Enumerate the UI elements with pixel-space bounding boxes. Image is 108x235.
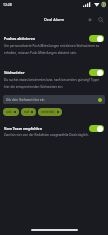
button[interactable]: Toggle: [89, 69, 104, 76]
staticText: Pushes aktivieren: [4, 36, 36, 41]
staticText: Du suchst etwas bestimmtes bzw. nach bes…: [4, 78, 101, 89]
staticText: Deal Alarm: [44, 17, 65, 22]
button[interactable]: Notifications: [84, 14, 95, 25]
staticText: usb: [6, 110, 12, 114]
staticText: Um personalisierte Push-Mitteilungen mit…: [4, 44, 101, 55]
staticText: Stichwörter: [4, 70, 25, 75]
button[interactable]: nintendo: [38, 108, 62, 116]
button[interactable]: Vom Team empfohlen: [0, 124, 108, 132]
button[interactable]: Toggle: [89, 35, 104, 42]
button[interactable]: Toggle: [89, 125, 104, 132]
button[interactable]: ssd: [21, 108, 36, 116]
staticText: 12:28: [3, 2, 12, 7]
button[interactable]: Add keyword: [98, 98, 102, 102]
staticText: nintendo: [41, 110, 55, 114]
staticText: Gib dein Stichwort hier ein: [6, 98, 45, 102]
staticText: Zwei bis vier von der Redaktion ausgewäh…: [4, 133, 89, 137]
button[interactable]: Gib dein Stichwort hier ein: [3, 95, 105, 104]
staticText: Vom Team empfohlen: [4, 126, 42, 131]
button[interactable]: Pushes aktivieren: [0, 34, 108, 42]
button[interactable]: Stichwörter: [0, 68, 108, 76]
button[interactable]: usb: [3, 108, 19, 116]
button[interactable]: Search: [95, 14, 106, 25]
staticText: ssd: [24, 110, 29, 114]
